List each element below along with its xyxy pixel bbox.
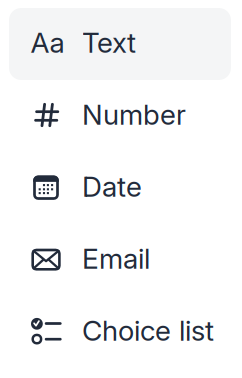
staticText: Aa [30, 26, 64, 59]
staticText: Email [82, 242, 150, 275]
button[interactable]: Number [0, 78, 242, 150]
button[interactable]: Aa [0, 6, 242, 78]
button[interactable]: Date [0, 150, 242, 222]
button[interactable]: Choice list [0, 294, 242, 366]
staticText: Choice list [82, 314, 214, 347]
button[interactable]: Email [0, 222, 242, 294]
staticText: Text [82, 26, 136, 59]
staticText: Date [82, 170, 142, 203]
staticText: Number [82, 98, 186, 131]
